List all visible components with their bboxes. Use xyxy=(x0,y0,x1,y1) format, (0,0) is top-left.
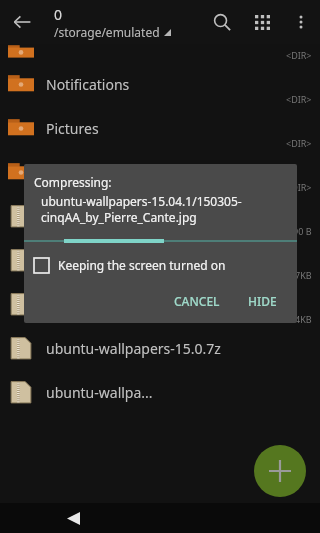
staticText: Download.7z xyxy=(46,207,320,226)
button[interactable]: ubuntu-wallpa... xyxy=(0,370,320,414)
button[interactable]: More options xyxy=(282,3,320,41)
staticText: /storage/emulated xyxy=(54,24,160,40)
button[interactable]: <DIR> xyxy=(0,42,320,62)
staticText: ubuntu-wallpa... xyxy=(46,383,320,402)
staticText: 4KB xyxy=(295,313,312,325)
button[interactable]: HIDE xyxy=(240,289,285,313)
button[interactable]: Pictures xyxy=(0,106,320,150)
button[interactable]: View mode xyxy=(242,2,282,42)
staticText: <DIR> xyxy=(286,181,312,193)
staticText: IFFSpecs.lzh xyxy=(46,251,320,270)
button[interactable]: 0 xyxy=(54,5,202,40)
staticText: Compressing: xyxy=(34,174,112,190)
button[interactable]: libusb-1.0.21.zip xyxy=(0,282,320,326)
staticText: Keeping the screen turned on xyxy=(58,257,226,273)
staticText: ubuntu-wallpapers-15.0.7z xyxy=(46,339,320,358)
button[interactable]: Back xyxy=(58,503,88,533)
button[interactable]: Download.7z xyxy=(0,194,320,238)
button[interactable]: Search xyxy=(202,2,242,42)
staticText: Pictures xyxy=(46,119,320,138)
button[interactable]: Add xyxy=(254,445,306,497)
button[interactable]: Back xyxy=(0,0,44,44)
staticText: 0 xyxy=(54,5,63,24)
button[interactable]: ubuntu-wallpapers-15.0.7z xyxy=(0,326,320,370)
staticText: 319.07KB xyxy=(272,269,312,281)
staticText: <DIR> xyxy=(286,49,312,61)
button[interactable]: CANCEL xyxy=(166,289,228,313)
staticText: Notifications xyxy=(46,75,320,94)
staticText: libusb-1.0.21.zip xyxy=(46,295,320,314)
staticText: Podcasts xyxy=(46,163,320,182)
button[interactable]: Podcasts xyxy=(0,150,320,194)
button[interactable]: Notifications xyxy=(0,62,320,106)
staticText: 90 B xyxy=(293,225,312,237)
staticText: ubuntu-wallpapers-15.04.1/150305-cinqAA_… xyxy=(41,193,289,225)
button[interactable]: Keeping the screen turned on xyxy=(34,257,297,273)
staticText: <DIR> xyxy=(286,137,312,149)
staticText: CANCEL xyxy=(174,293,220,309)
button[interactable]: IFFSpecs.lzh xyxy=(0,238,320,282)
staticText: <DIR> xyxy=(286,93,312,105)
staticText: HIDE xyxy=(248,293,277,309)
